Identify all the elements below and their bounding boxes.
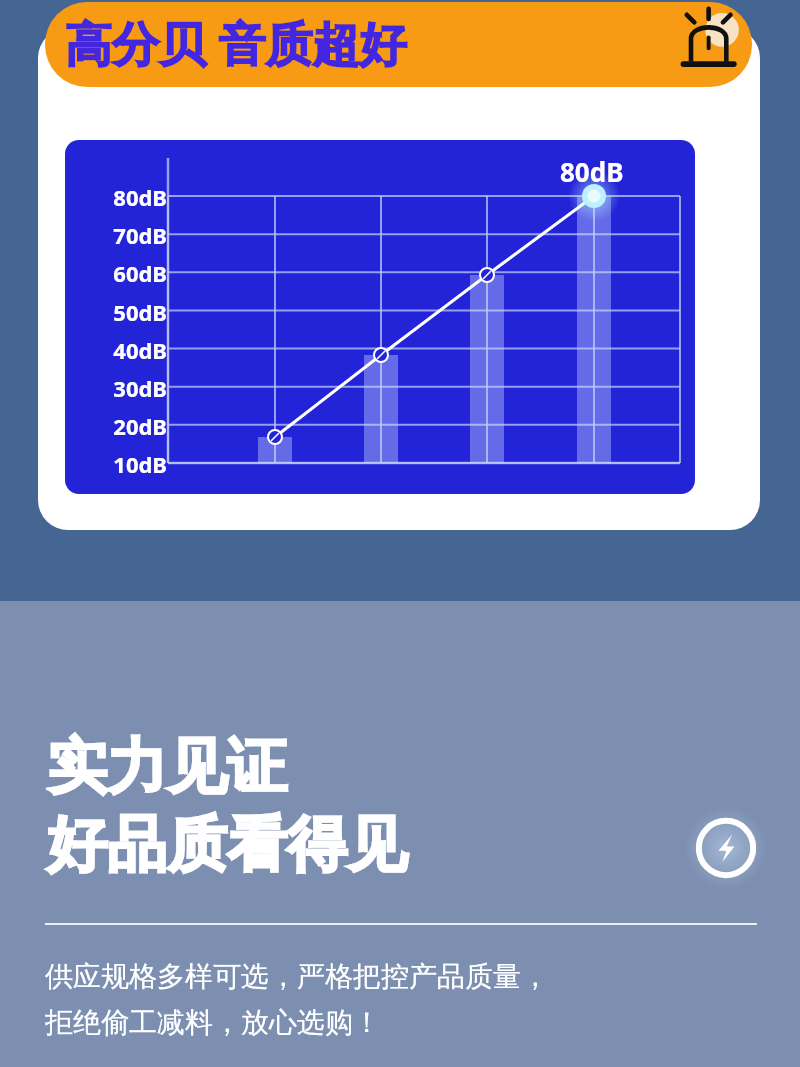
staticText: 80dB xyxy=(95,182,167,212)
staticText: 10dB xyxy=(95,449,167,479)
staticText: 80dB xyxy=(560,154,624,189)
staticText: 拒绝偷工减料，放心选购！ xyxy=(45,1005,381,1040)
button[interactable]: Alarm siren xyxy=(670,3,752,87)
staticText: 好品质看得见 xyxy=(47,807,407,883)
staticText: 70dB xyxy=(95,220,167,250)
button[interactable]: 高分贝 音质超好 xyxy=(45,2,752,87)
staticText: 高分贝 音质超好 xyxy=(65,11,407,75)
staticText: 实力见证 xyxy=(47,729,287,805)
staticText: 20dB xyxy=(95,411,167,441)
button[interactable]: Power xyxy=(686,808,766,888)
staticText: 60dB xyxy=(95,258,167,288)
staticText: 30dB xyxy=(95,373,167,403)
staticText: 50dB xyxy=(95,297,167,327)
staticText: 40dB xyxy=(95,335,167,365)
staticText: 供应规格多样可选，严格把控产品质量， xyxy=(45,959,549,994)
